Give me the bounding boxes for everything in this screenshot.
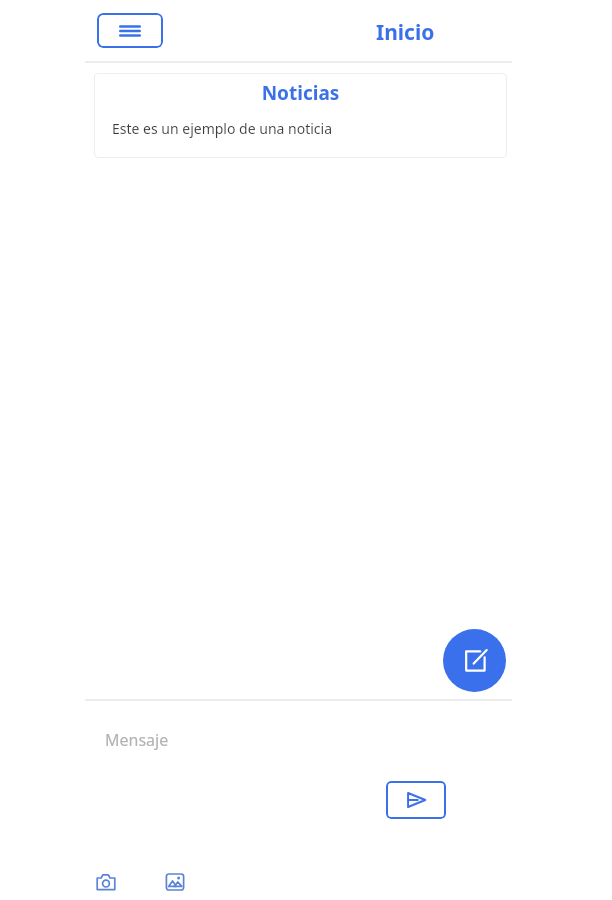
- button[interactable]: Gallery: [161, 868, 189, 896]
- staticText: Noticias: [94, 80, 507, 106]
- button[interactable]: Menu: [97, 13, 163, 48]
- staticText: Mensaje: [105, 729, 169, 751]
- button[interactable]: Compose: [443, 629, 506, 692]
- staticText: Este es un ejemplo de una noticia: [112, 119, 333, 138]
- button[interactable]: Send: [386, 781, 446, 819]
- button[interactable]: Mensaje: [85, 715, 512, 765]
- button[interactable]: Camera: [92, 868, 120, 896]
- button[interactable]: Noticias: [94, 73, 507, 158]
- staticText: Inicio: [376, 18, 435, 47]
